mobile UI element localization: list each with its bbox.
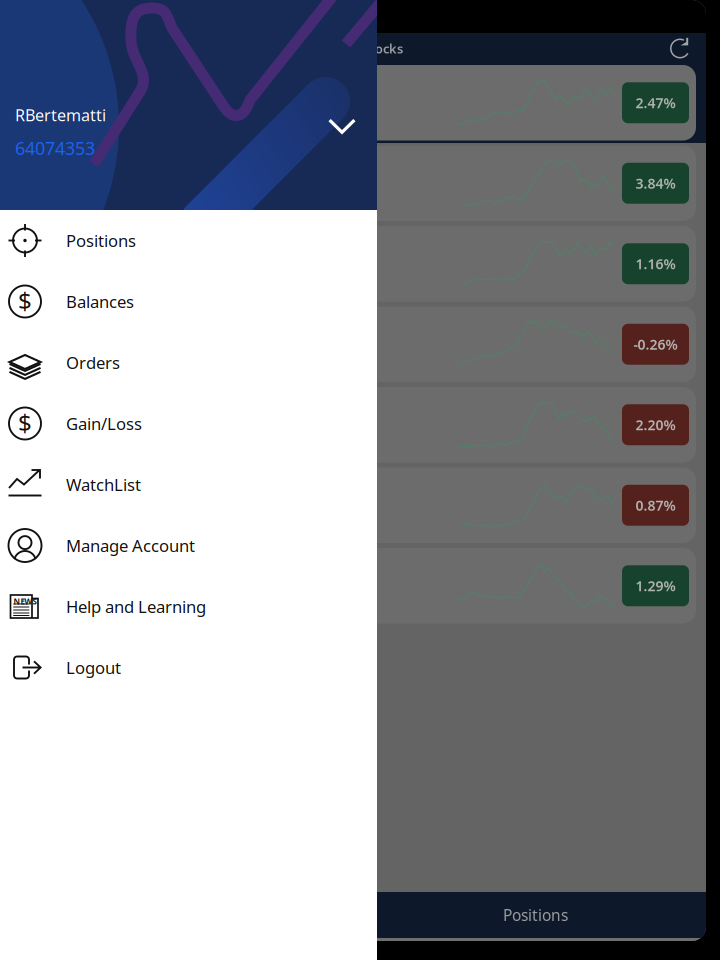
- staticText: Positions: [503, 904, 568, 926]
- staticText: Gain/Loss: [66, 412, 142, 435]
- button[interactable]: Positions: [0, 210, 377, 271]
- button[interactable]: Manage Account: [0, 515, 377, 576]
- staticText: Positions: [66, 229, 136, 252]
- staticText: Stocks: [363, 40, 403, 57]
- staticText: NEWS: [13, 596, 36, 607]
- staticText: 0.87%: [635, 496, 675, 515]
- staticText: Logout: [66, 656, 121, 679]
- button[interactable]: 2.47%: [355, 65, 696, 140]
- staticText: -0.26%: [633, 335, 677, 354]
- button[interactable]: 2.20%: [355, 387, 696, 462]
- button[interactable]: NEWS: [0, 576, 377, 637]
- button[interactable]: $: [0, 393, 377, 454]
- button[interactable]: 0.87%: [355, 467, 696, 543]
- staticText: 64074353: [15, 136, 95, 160]
- staticText: 1.16%: [635, 254, 675, 273]
- button[interactable]: 3.84%: [355, 145, 696, 221]
- staticText: Orders: [66, 351, 120, 374]
- button[interactable]: Logout: [0, 637, 377, 698]
- button[interactable]: 1.16%: [355, 226, 696, 301]
- staticText: 3.84%: [635, 174, 675, 193]
- staticText: Manage Account: [66, 534, 195, 557]
- staticText: 2.20%: [635, 415, 675, 434]
- button[interactable]: Positions: [345, 892, 706, 938]
- staticText: Balances: [66, 290, 134, 313]
- staticText: 1.29%: [635, 576, 675, 595]
- staticText: 2.47%: [635, 93, 675, 112]
- staticText: Help and Learning: [66, 595, 206, 618]
- staticText: $: [18, 407, 32, 438]
- button[interactable]: $: [0, 271, 377, 332]
- button[interactable]: -0.26%: [355, 306, 696, 382]
- button[interactable]: 1.29%: [355, 548, 696, 623]
- button[interactable]: Refresh: [668, 36, 692, 60]
- button[interactable]: Switch account: [328, 118, 356, 134]
- button[interactable]: Orders: [0, 332, 377, 393]
- staticText: WatchList: [66, 473, 141, 496]
- staticText: $: [18, 285, 32, 316]
- button[interactable]: WatchList: [0, 454, 377, 515]
- staticText: RBertematti: [15, 104, 106, 126]
